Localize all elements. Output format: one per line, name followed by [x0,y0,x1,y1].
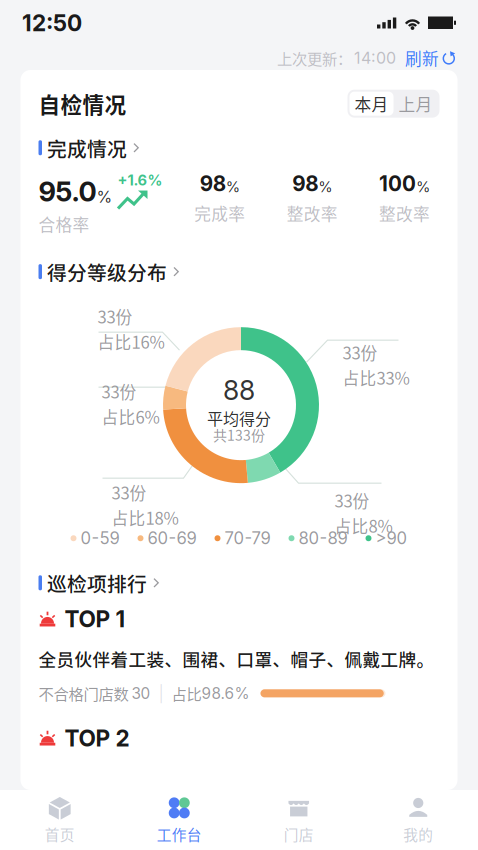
staticText: 完成率 [194,201,245,225]
staticText: TOP 1 [64,605,125,633]
staticText: 14:00 [354,48,396,68]
staticText: >90 [375,528,407,548]
staticText: 首页 [45,823,75,845]
staticText: 70-79 [224,528,270,548]
staticText: 33份 [101,379,136,403]
button[interactable]: 得分等级分布 [38,261,439,282]
staticText: 占比16% [97,329,164,353]
button[interactable]: 我的 [358,790,478,850]
button[interactable]: 上月 [393,92,437,116]
staticText: 得分等级分布 [47,257,167,286]
staticText: 98 [292,171,318,196]
staticText: % [226,178,240,196]
staticText: 本月 [354,92,388,116]
staticText: 占比6% [101,404,159,428]
staticText: 88 [223,374,255,406]
staticText: 共133份 [213,425,265,445]
staticText: 98 [200,171,226,196]
staticText: 占比8% [334,513,392,537]
staticText: TOP 2 [64,724,129,752]
staticText: 60-69 [147,528,196,548]
staticText: 平均得分 [207,406,271,430]
button[interactable]: 首页 [0,790,119,850]
staticText: 上次更新： [277,47,352,69]
staticText: 自检情况 [38,88,126,119]
staticText: | [158,684,163,703]
staticText: 0-59 [80,528,119,548]
staticText: % [96,187,112,207]
button[interactable]: 刷新 [396,46,456,70]
staticText: 我的 [403,823,433,845]
staticText: 全员伙伴着工装、围裙、口罩、帽子、佩戴工牌。 [38,646,434,671]
staticText: 占比 [171,682,201,704]
button[interactable]: 巡检项排行 [38,572,439,593]
button[interactable]: 完成情况 [38,137,439,158]
staticText: 整改率 [379,201,430,225]
staticText: 工作台 [157,823,202,845]
button[interactable]: 门店 [239,790,358,850]
staticText: 12:50 [22,9,82,37]
staticText: % [416,178,430,196]
staticText: 98.6% [201,684,249,703]
staticText: 100 [379,171,416,196]
staticText: 门店 [284,823,314,845]
staticText: 不合格门店数 [38,682,131,704]
staticText: 33份 [97,304,132,328]
staticText: 33份 [111,480,146,504]
staticText: 95.0 [38,175,96,208]
staticText: 33份 [342,340,377,364]
staticText: % [318,178,332,196]
button[interactable]: 本月 [349,92,393,116]
staticText: 30 [131,684,150,703]
staticText: 占比18% [111,505,178,529]
staticText: 占比33% [342,365,409,389]
staticText: +1.6% [117,171,162,189]
staticText: 巡检项排行 [47,568,147,597]
staticText: 刷新 [405,46,439,70]
button[interactable]: 工作台 [119,790,239,850]
staticText: 上月 [398,92,432,116]
staticText: 合格率 [38,212,89,236]
staticText: 整改率 [287,201,338,225]
staticText: 33份 [334,488,369,512]
staticText: 完成情况 [47,133,127,162]
staticText: 80-89 [298,528,347,548]
